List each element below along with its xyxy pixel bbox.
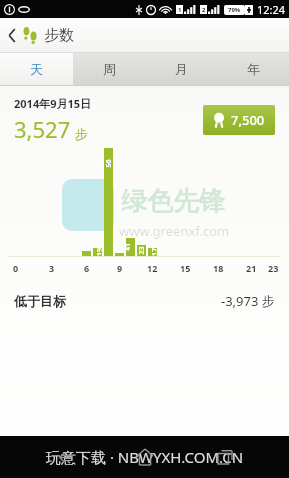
- button[interactable]: Back: [0, 22, 46, 48]
- staticText: 12: [147, 262, 158, 274]
- staticText: 21: [246, 262, 257, 274]
- staticText: 6: [84, 262, 90, 274]
- staticText: 2014年9月15日: [14, 96, 92, 111]
- button[interactable]: 周: [73, 53, 145, 85]
- button[interactable]: Home: [128, 440, 162, 474]
- staticText: 2: [202, 6, 206, 14]
- staticText: 3,527: [14, 114, 71, 144]
- staticText: 低于目标: [14, 293, 66, 309]
- staticText: 0: [13, 262, 19, 274]
- button[interactable]: 天: [0, 53, 73, 85]
- staticText: 15: [180, 262, 191, 274]
- staticText: 79%: [228, 6, 241, 14]
- staticText: 18: [213, 262, 224, 274]
- staticText: 天: [30, 61, 43, 77]
- staticText: 7,500: [231, 111, 265, 129]
- button[interactable]: 月: [145, 53, 217, 85]
- staticText: 12:24: [257, 2, 286, 17]
- staticText: 2,567: [94, 159, 124, 168]
- staticText: 月: [175, 61, 188, 77]
- staticText: 415: [122, 242, 139, 251]
- staticText: 玩意下载 · NBWYXH.COM.CN: [46, 447, 244, 467]
- staticText: 步: [75, 126, 88, 142]
- staticText: 234: [137, 246, 147, 255]
- staticText: 绿色先锋: [121, 185, 225, 218]
- staticText: 3: [49, 262, 55, 274]
- staticText: 193: [94, 247, 101, 256]
- staticText: 1: [178, 6, 182, 14]
- button[interactable]: Back: [47, 440, 81, 474]
- staticText: 23: [268, 262, 279, 274]
- button[interactable]: Recent apps: [208, 440, 242, 474]
- button[interactable]: 年: [217, 53, 289, 85]
- staticText: 9: [117, 262, 123, 274]
- staticText: www.greenxf.com: [119, 222, 230, 240]
- staticText: 171: [149, 247, 156, 256]
- staticText: 7: [119, 252, 121, 257]
- staticText: 步数: [44, 26, 74, 45]
- button[interactable]: 7,500: [203, 105, 275, 135]
- staticText: 周: [103, 61, 116, 77]
- staticText: 年: [247, 61, 260, 77]
- staticText: -3,973 步: [221, 292, 275, 310]
